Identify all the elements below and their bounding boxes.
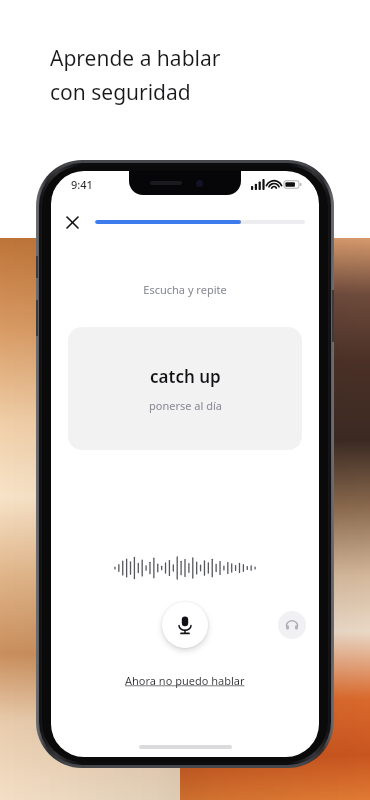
staticText: catch up <box>150 365 221 388</box>
staticText: Ahora no puedo hablar <box>125 673 245 688</box>
staticText: Aprende a hablar <box>50 44 221 73</box>
staticText: ponerse al día <box>149 398 222 413</box>
button[interactable]: Cerrar <box>57 207 87 237</box>
button[interactable]: catch up <box>68 327 302 450</box>
button[interactable]: Hablar <box>162 602 208 648</box>
staticText: 9:41 <box>71 177 93 192</box>
button[interactable]: Escuchar con auriculares <box>278 611 306 639</box>
button[interactable]: Ahora no puedo hablar <box>51 673 319 688</box>
staticText: Escucha y repite <box>51 282 319 297</box>
staticText: con seguridad <box>50 78 191 107</box>
